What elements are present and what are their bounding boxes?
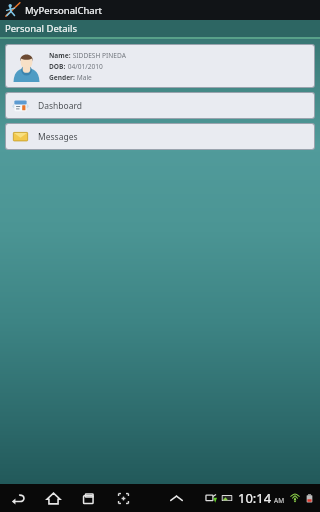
- staticText: SIDDESH PINEDA: [71, 51, 126, 60]
- button[interactable]: Back: [9, 489, 28, 508]
- button[interactable]: Home: [44, 489, 63, 508]
- staticText: Gender:: [49, 73, 75, 82]
- button[interactable]: Show notifications: [167, 489, 186, 508]
- button[interactable]: Recent apps: [79, 489, 98, 508]
- button[interactable]: Screenshot: [114, 489, 133, 508]
- staticText: Name:: [49, 51, 71, 60]
- button[interactable]: Name:: [6, 45, 314, 87]
- staticText: Male: [75, 73, 92, 82]
- staticText: AM: [274, 496, 285, 505]
- staticText: 04/01/2010: [66, 62, 103, 71]
- other: App logo: [3, 1, 21, 19]
- staticText: DOB:: [49, 62, 66, 71]
- staticText: Personal Details: [5, 22, 77, 35]
- staticText: Messages: [38, 131, 78, 143]
- staticText: Dashboard: [38, 100, 83, 112]
- staticText: 10:14: [238, 489, 272, 507]
- button[interactable]: Dashboard: [6, 93, 314, 118]
- staticText: MyPersonalChart: [25, 4, 102, 17]
- button[interactable]: Messages: [6, 124, 314, 149]
